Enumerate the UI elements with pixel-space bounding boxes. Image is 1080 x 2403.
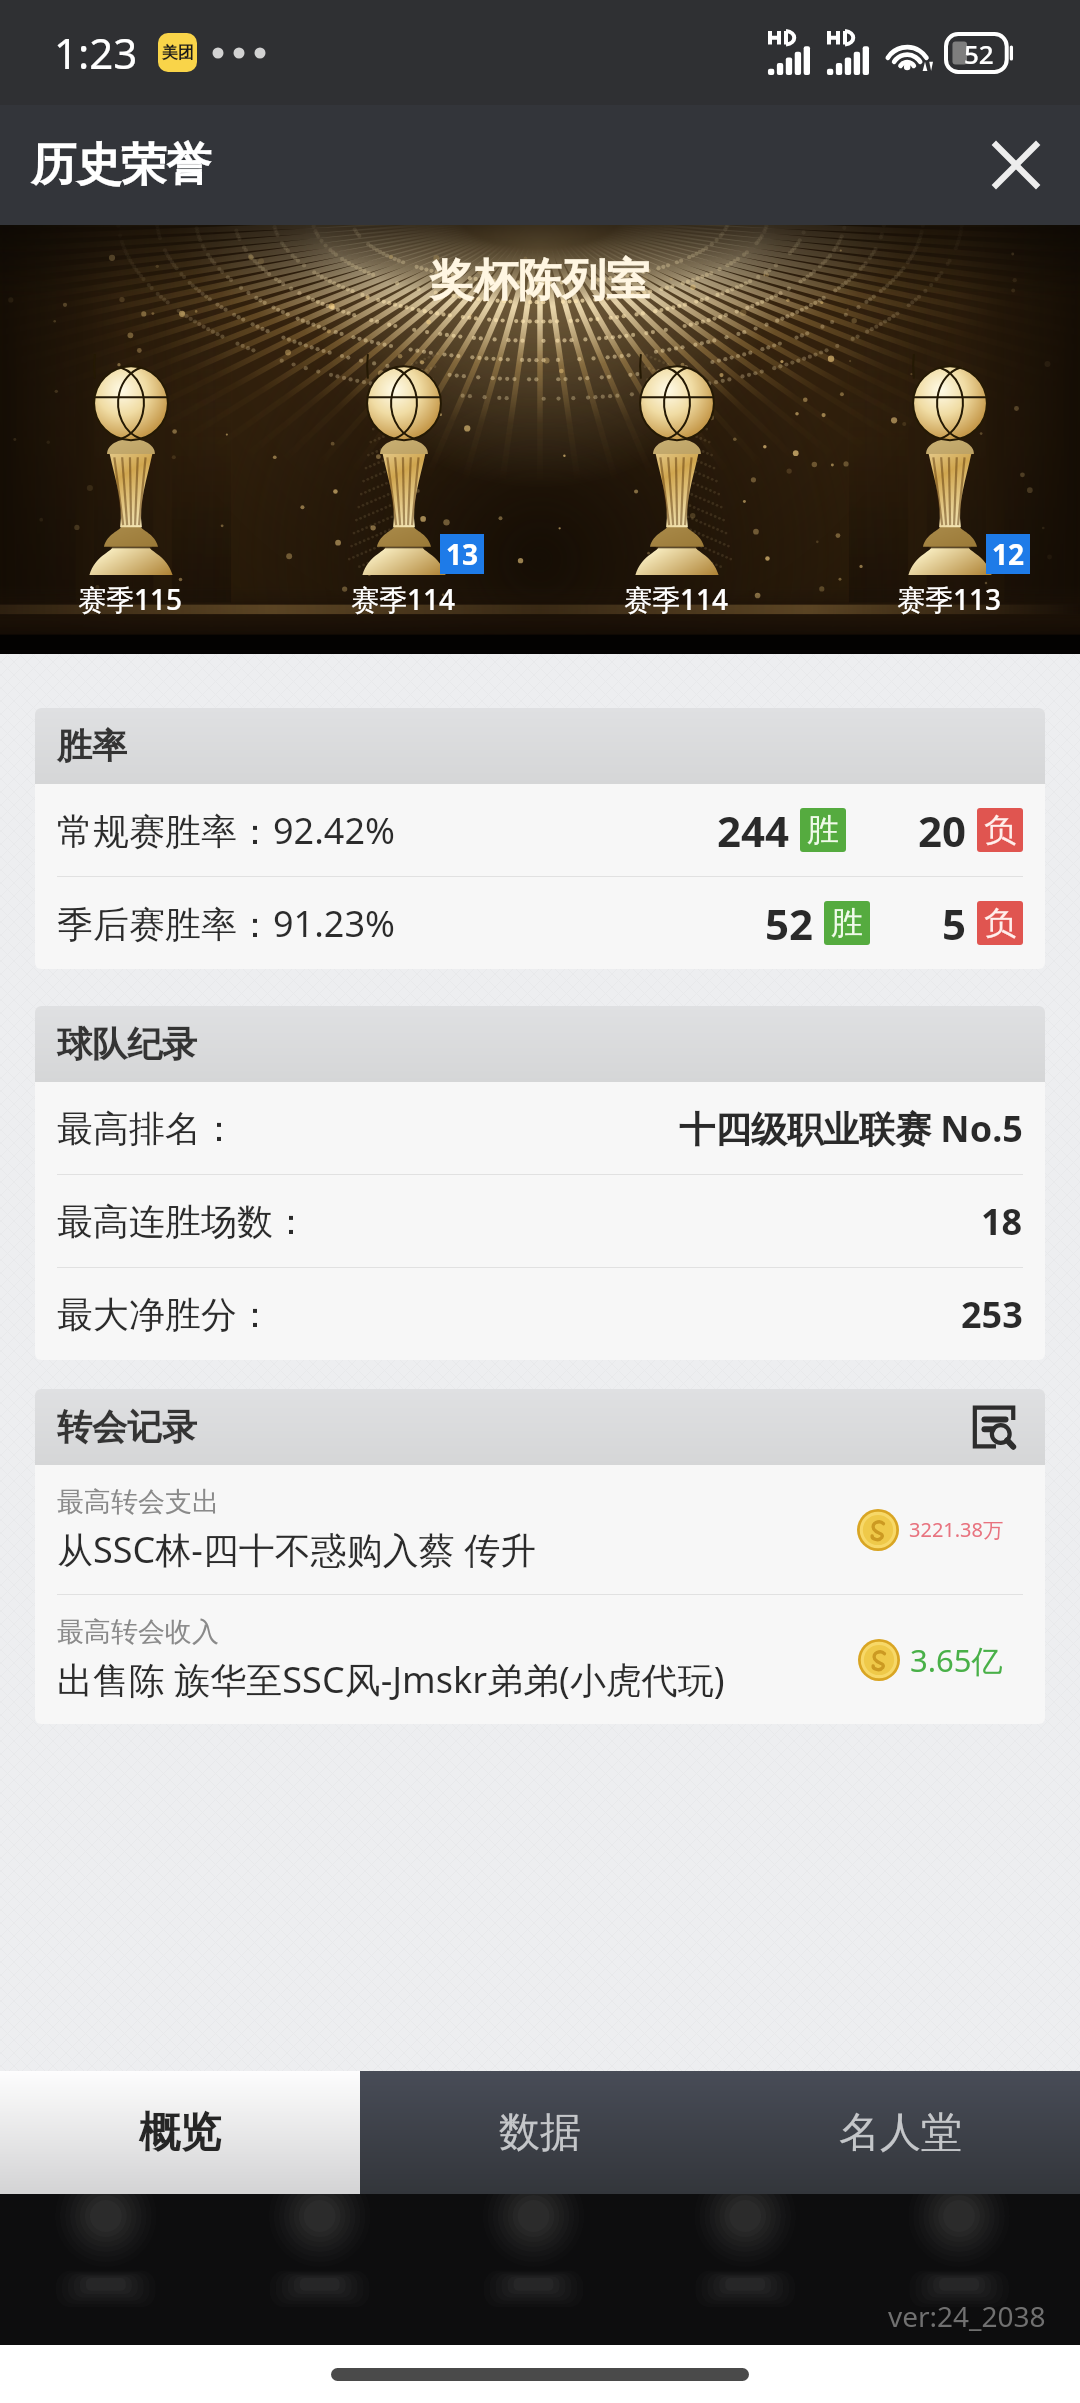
staticText: 负	[984, 810, 1016, 850]
staticText: 美团	[162, 43, 194, 63]
staticText: 3221.38万	[909, 1516, 1003, 1543]
staticText: 从SSC林-四十不惑购入蔡 传升	[57, 1525, 537, 1574]
button[interactable]: Navigation item	[432, 2194, 648, 2345]
button[interactable]: Navigation item	[648, 2194, 864, 2345]
button[interactable]: Navigation item	[864, 2194, 1080, 2345]
button[interactable]: 数据	[360, 2071, 720, 2194]
staticText: 253	[961, 1290, 1023, 1339]
button[interactable]: 最高排名：	[35, 1082, 1045, 1174]
staticText: 出售陈 族华至SSC风-Jmskr弟弟(小虎代玩)	[57, 1655, 725, 1704]
staticText: 最高转会收入	[57, 1615, 219, 1649]
staticText: 20	[918, 802, 967, 859]
staticText: 赛季113	[897, 580, 1002, 618]
button[interactable]: 最高连胜场数：	[35, 1175, 1045, 1267]
staticText: 胜	[831, 903, 863, 943]
button[interactable]: 常规赛胜率：92.42%	[35, 784, 1045, 876]
staticText: 最高转会支出	[57, 1485, 219, 1519]
staticText: 概览	[139, 2107, 221, 2159]
button[interactable]: Navigation item	[216, 2194, 432, 2345]
button[interactable]: 最高转会支出	[35, 1465, 1045, 1594]
staticText: 赛季114	[351, 580, 456, 618]
button[interactable]: 最高转会收入	[35, 1595, 1045, 1724]
staticText: 52	[964, 36, 994, 71]
staticText: 数据	[499, 2107, 581, 2159]
staticText: 负	[984, 903, 1016, 943]
staticText: 52	[765, 895, 814, 952]
staticText: 3.65亿	[910, 1639, 1003, 1681]
staticText: 奖杯陈列室	[430, 253, 650, 308]
staticText: 1:23	[54, 24, 138, 81]
staticText: 胜	[807, 810, 839, 850]
staticText: 赛季115	[78, 580, 183, 618]
staticText: 244	[717, 802, 790, 859]
staticText: ver:24_2038	[888, 2297, 1046, 2335]
staticText: 常规赛胜率：92.42%	[57, 806, 395, 855]
button[interactable]: 名人堂	[720, 2071, 1080, 2194]
staticText: 18	[981, 1197, 1023, 1246]
staticText: 季后赛胜率：91.23%	[57, 899, 395, 948]
staticText: 最高连胜场数：	[57, 1199, 309, 1244]
staticText: 名人堂	[839, 2107, 962, 2159]
button[interactable]: 概览	[0, 2071, 360, 2194]
staticText: 最高排名：	[57, 1106, 237, 1151]
button[interactable]: Navigation item	[0, 2194, 216, 2345]
staticText: 赛季114	[624, 580, 729, 618]
button[interactable]: 季后赛胜率：91.23%	[35, 877, 1045, 969]
button[interactable]: Transfer history search	[967, 1399, 1023, 1455]
staticText: 最大净胜分：	[57, 1292, 273, 1337]
button[interactable]: Close	[972, 121, 1060, 209]
staticText: 球队纪录	[57, 1022, 197, 1066]
staticText: 胜率	[57, 724, 127, 768]
staticText: 十四级职业联赛 No.5	[679, 1104, 1023, 1153]
staticText: 5	[942, 895, 967, 952]
staticText: 历史荣誉	[31, 137, 211, 194]
staticText: 转会记录	[57, 1405, 197, 1449]
staticText: 13	[446, 535, 479, 573]
button[interactable]: 最大净胜分：	[35, 1268, 1045, 1360]
staticText: 12	[992, 535, 1025, 573]
